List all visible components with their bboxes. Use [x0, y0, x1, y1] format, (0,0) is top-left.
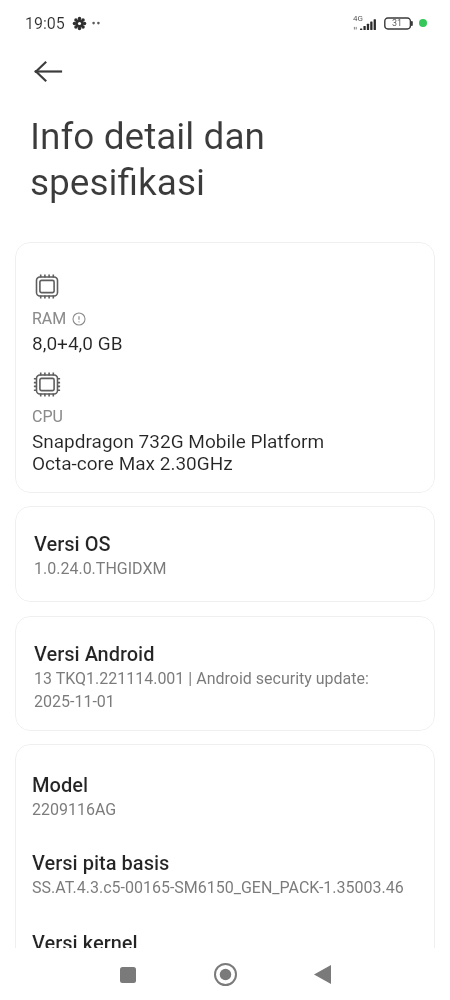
staticText: 4G	[353, 14, 363, 23]
button[interactable]: Versi Android	[15, 616, 435, 731]
staticText: 19:05	[25, 14, 65, 33]
staticText: Versi Android	[34, 642, 155, 665]
staticText: Snapdragon 732G Mobile Platform Octa-cor…	[32, 430, 325, 475]
staticText: Versi pita basis	[32, 851, 170, 874]
button[interactable]: RAM	[15, 242, 435, 493]
staticText: Versi OS	[34, 532, 111, 555]
staticText: SS.AT.4.3.c5-00165-SM6150_GEN_PACK-1.350…	[32, 878, 404, 897]
staticText: Versi kernel	[32, 931, 138, 948]
button[interactable]: Model	[15, 744, 435, 948]
staticText: Info detail dan spesifikasi	[30, 115, 265, 204]
staticText: 13 TKQ1.221114.001 | Android security up…	[34, 669, 369, 711]
button[interactable]: Back	[291, 949, 353, 1000]
staticText: 2209116AG	[32, 800, 117, 819]
staticText: CPU	[32, 407, 63, 426]
button[interactable]: Back	[25, 48, 71, 94]
button[interactable]: Versi OS	[15, 506, 435, 602]
staticText: 8,0+4,0 GB	[32, 332, 123, 354]
button[interactable]: Home	[194, 949, 256, 1000]
staticText: 1.0.24.0.THGIDXM	[34, 559, 167, 578]
staticText: RAM	[32, 309, 67, 328]
staticText: 31	[392, 18, 403, 29]
button[interactable]: Recents	[97, 949, 159, 1000]
staticText: Model	[32, 773, 89, 796]
